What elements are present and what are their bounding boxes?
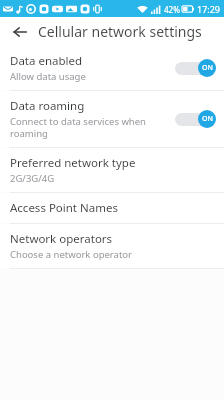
staticText: Access Point Names <box>10 200 118 216</box>
staticText: Connect to data services when roaming <box>10 115 146 140</box>
staticText: ON <box>202 114 213 124</box>
staticText: Data roaming <box>10 98 85 114</box>
staticText: Network operators <box>10 231 113 247</box>
staticText: 17:29 <box>197 3 221 15</box>
button[interactable]: Data enabled <box>0 46 224 90</box>
staticText: 2G/3G/4G <box>10 172 55 185</box>
staticText: Preferred network type <box>10 155 136 171</box>
button[interactable]: Back <box>6 18 34 46</box>
staticText: 42% <box>164 4 180 15</box>
staticText: Choose a network operator <box>10 248 132 261</box>
staticText: ON <box>202 63 213 73</box>
button[interactable]: Preferred network type <box>0 148 224 192</box>
staticText: Data enabled <box>10 53 83 69</box>
button[interactable]: Toggle on <box>174 110 216 128</box>
button[interactable]: Toggle on <box>174 59 216 77</box>
button[interactable]: Data roaming <box>0 91 224 147</box>
button[interactable]: Access Point Names <box>0 193 224 223</box>
button[interactable]: Network operators <box>0 224 224 268</box>
staticText: Allow data usage <box>10 70 86 83</box>
staticText: Cellular network settings <box>38 22 202 41</box>
